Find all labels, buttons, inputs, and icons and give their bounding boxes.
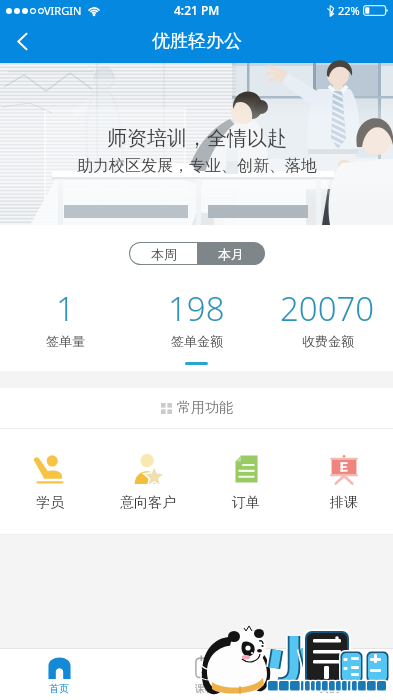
staticText: 4:21 PM (174, 2, 220, 18)
button[interactable]: 198 (131, 286, 262, 349)
button[interactable]: 1 (0, 286, 131, 349)
staticText: VIRGIN (44, 3, 82, 18)
staticText: 意向客户 (120, 494, 176, 512)
staticText: 助力校区发展，专业、创新、落地 (77, 156, 317, 176)
button[interactable]: 学员 (0, 453, 99, 512)
staticText: 20070 (280, 286, 375, 331)
button[interactable]: 意向客户 (99, 453, 197, 512)
button[interactable]: 课程 (132, 649, 278, 700)
staticText: 本周 (151, 246, 177, 262)
button[interactable]: 20070 (262, 286, 393, 349)
staticText: 本月 (218, 246, 244, 262)
staticText: 1 (56, 286, 75, 331)
staticText: 排课 (330, 494, 358, 512)
button[interactable]: 首页 (0, 649, 132, 700)
button[interactable]: 本周 (130, 243, 197, 264)
staticText: 常用功能 (177, 399, 233, 417)
staticText: 22% (338, 3, 360, 18)
button[interactable]: 订单 (197, 453, 295, 512)
staticText: 优胜轻办公 (152, 30, 242, 53)
staticText: 师资培训，全情以赴 (107, 126, 287, 151)
staticText: 学员 (36, 494, 64, 512)
button[interactable]: 排课 (295, 453, 393, 512)
staticText: 我的 (319, 682, 339, 695)
staticText: 签单量 (46, 333, 85, 349)
staticText: 订单 (232, 494, 260, 512)
button[interactable]: 本月 (197, 243, 264, 264)
staticText: 198 (168, 286, 225, 331)
staticText: 签单金额 (171, 333, 223, 349)
staticText: 收费金额 (302, 333, 354, 349)
button[interactable]: Back (0, 20, 44, 63)
staticText: 课程 (195, 682, 215, 695)
button[interactable]: 我的 (278, 649, 379, 700)
staticText: 首页 (49, 682, 69, 695)
